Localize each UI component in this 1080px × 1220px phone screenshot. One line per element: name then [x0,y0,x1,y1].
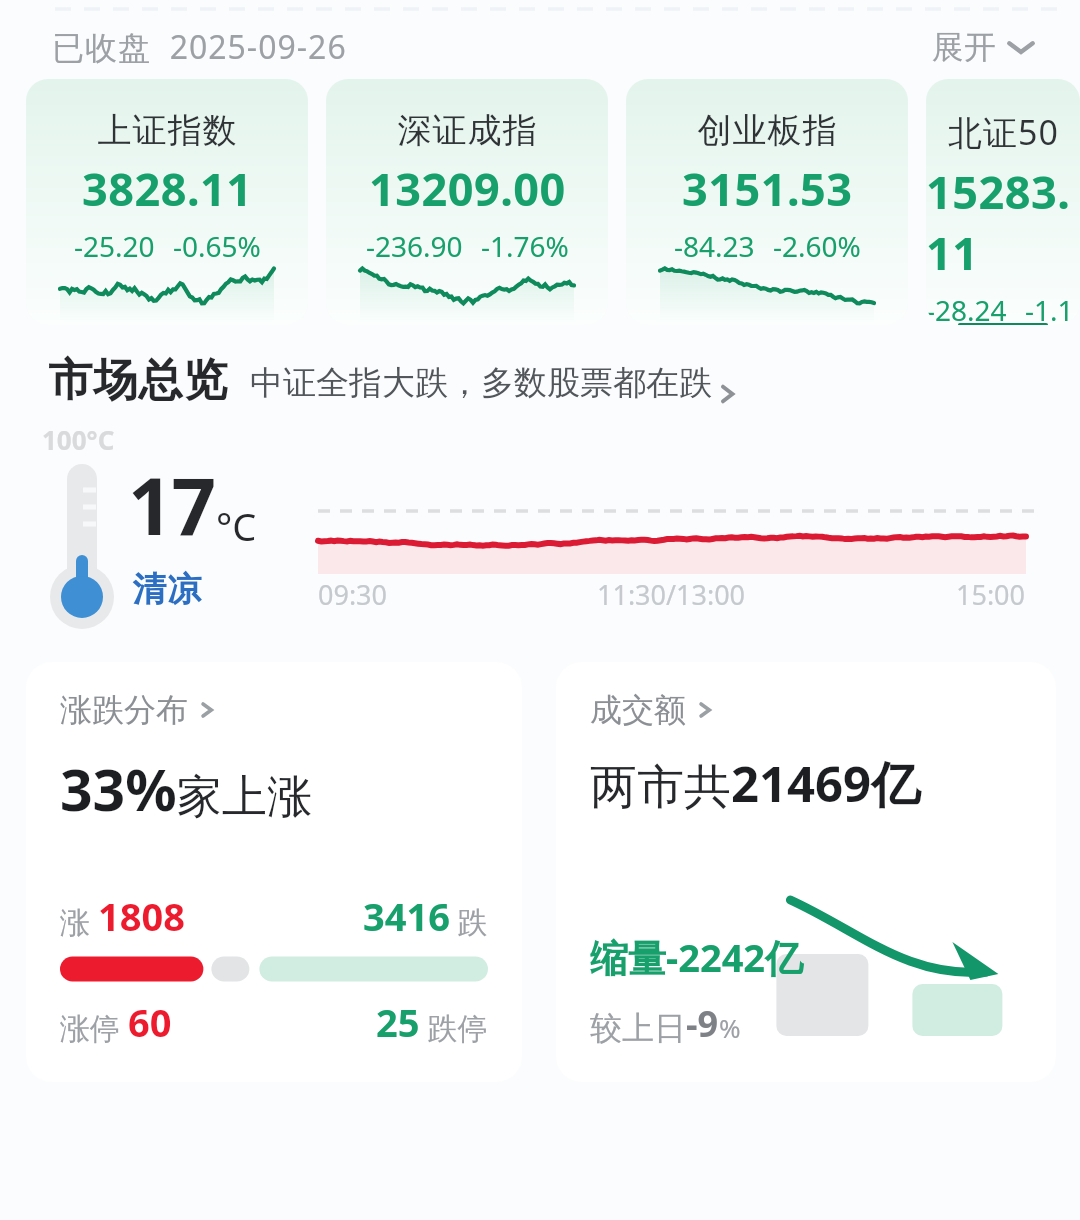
button[interactable]: 上证指数 [26,79,308,325]
staticText: 市场总览 [48,353,228,408]
staticText: 清凉 [132,568,202,611]
staticText: 缩量-2242亿 [590,931,804,983]
staticText: 3416 [363,890,450,942]
staticText: 较上日 [590,1008,686,1048]
staticText: 1808 [98,890,185,942]
staticText: 跌停 [420,1007,488,1048]
staticText: 100°C [42,422,115,457]
staticText: 3828.11 [82,158,253,219]
staticText: 成交额 [590,690,686,730]
staticText: 09:30 [318,576,388,613]
staticText: 中证全指大跌，多数股票都在跌 [250,362,712,404]
staticText: 15:00 [956,576,1026,613]
staticText: 15283.11 [926,161,1080,283]
button[interactable]: 创业板指 [626,79,908,325]
staticText: -1.10% [1025,291,1080,325]
staticText: -0.65% [173,227,261,265]
staticText: -236.90 [366,227,463,265]
staticText: 涨停 [60,1007,128,1048]
staticText: 21469亿 [731,750,921,817]
staticText: -28.24 [926,291,1007,325]
button[interactable]: 市场总览 [0,353,1080,408]
staticText: 33% [60,750,177,828]
button[interactable]: 北证50 [926,79,1080,325]
staticText: -84.23 [674,227,755,265]
staticText: -1.76% [481,227,569,265]
staticText: 展开 [932,27,996,67]
staticText: 60 [128,996,172,1048]
staticText: 深证成指 [397,109,537,152]
staticText: 已收盘 2025-09-26 [52,25,347,69]
staticText: 3151.53 [682,158,853,219]
staticText: °C [216,500,257,552]
staticText: % [719,1010,741,1045]
button[interactable]: 展开 [926,21,1040,73]
staticText: 25 [376,996,420,1048]
button[interactable]: 成交额 [556,662,1056,1082]
staticText: 涨 [60,901,98,942]
staticText: 涨跌分布 [60,690,188,730]
staticText: 创业板指 [697,109,837,152]
other: Market temperature [38,420,120,632]
staticText: 11:30/13:00 [597,576,746,613]
button[interactable]: 深证成指 [326,79,608,325]
staticText: 上证指数 [97,109,237,152]
staticText: -2.60% [773,227,861,265]
staticText: 北证50 [948,109,1059,155]
staticText: 17 [128,452,216,558]
staticText: 家上涨 [177,769,312,826]
staticText: 两市共 [590,758,731,817]
staticText: 跌 [450,901,488,942]
button[interactable]: 涨跌分布 [26,662,522,1082]
staticText: -9 [686,999,719,1048]
staticText: 13209.00 [369,158,566,219]
staticText: -25.20 [74,227,155,265]
